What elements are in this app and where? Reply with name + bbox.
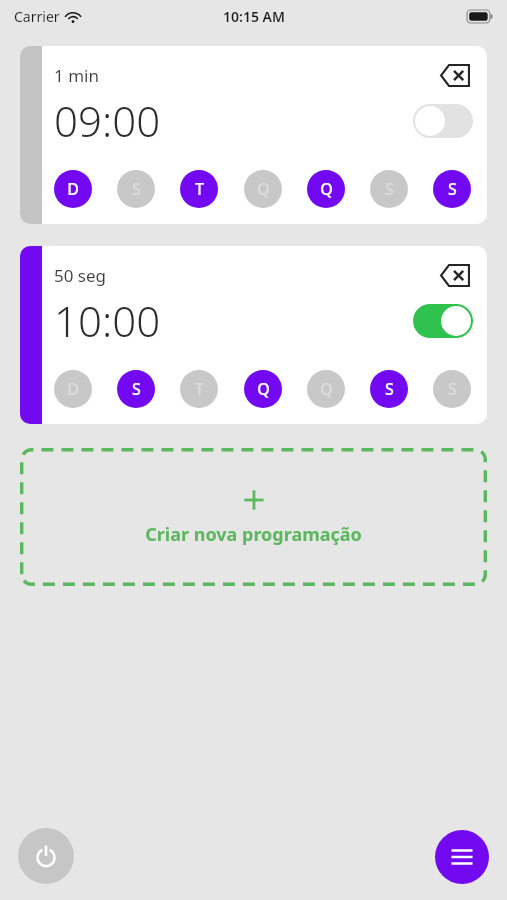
staticText: 10:00 — [54, 292, 161, 349]
staticText: S — [385, 378, 394, 400]
button[interactable]: Delete — [437, 60, 473, 90]
button[interactable]: S — [370, 170, 408, 208]
staticText: T — [195, 378, 204, 400]
button[interactable]: Q — [244, 370, 282, 408]
staticText: S — [132, 378, 141, 400]
button[interactable]: S — [433, 370, 471, 408]
staticText: S — [132, 178, 141, 200]
staticText: Q — [257, 178, 270, 200]
staticText: T — [195, 178, 204, 200]
button[interactable]: S — [117, 370, 155, 408]
staticText: Q — [257, 378, 270, 400]
button[interactable]: T — [180, 370, 218, 408]
button[interactable]: 1 min — [20, 46, 487, 224]
staticText: Q — [320, 378, 333, 400]
staticText: Q — [320, 178, 333, 200]
button[interactable]: Q — [307, 170, 345, 208]
staticText: S — [448, 178, 457, 200]
staticText: 09:00 — [54, 92, 161, 149]
staticText: Carrier — [14, 7, 60, 26]
button[interactable]: Disabled — [413, 104, 473, 138]
staticText: S — [448, 378, 457, 400]
button[interactable]: Enabled — [413, 304, 473, 338]
button[interactable]: Q — [307, 370, 345, 408]
button[interactable]: Criar nova programação — [20, 448, 487, 586]
button[interactable]: Q — [244, 170, 282, 208]
button[interactable]: 50 seg — [20, 246, 487, 424]
staticText: Criar nova programação — [145, 522, 362, 547]
staticText: 1 min — [54, 64, 99, 87]
button[interactable]: Power — [18, 828, 74, 884]
staticText: D — [67, 178, 79, 200]
staticText: D — [67, 378, 79, 400]
button[interactable]: D — [54, 370, 92, 408]
button[interactable]: S — [433, 170, 471, 208]
button[interactable]: Menu — [435, 830, 489, 884]
button[interactable]: S — [370, 370, 408, 408]
button[interactable]: T — [180, 170, 218, 208]
button[interactable]: S — [117, 170, 155, 208]
button[interactable]: Delete — [437, 260, 473, 290]
staticText: 50 seg — [54, 264, 107, 287]
staticText: S — [385, 178, 394, 200]
staticText: 10:15 AM — [223, 7, 285, 26]
button[interactable]: D — [54, 170, 92, 208]
